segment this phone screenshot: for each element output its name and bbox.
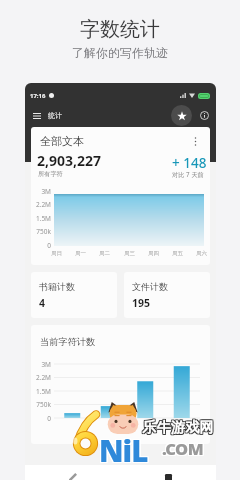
staticText: .COM xyxy=(163,436,205,458)
staticText: NiL xyxy=(98,429,147,469)
staticText: 周四 xyxy=(148,250,159,257)
staticText: 了解你的写作轨迹 xyxy=(72,45,168,60)
staticText: 周五 xyxy=(172,250,183,257)
staticText: 字数统计 xyxy=(80,17,160,42)
staticText: 0 xyxy=(31,414,51,423)
staticText: 乐牛游戏网 xyxy=(141,418,213,436)
staticText: 2.2M xyxy=(31,200,51,209)
staticText: 乐牛游戏网 xyxy=(142,419,214,437)
staticText: 3M xyxy=(31,187,51,196)
staticText: + 148 xyxy=(172,154,207,172)
staticText: .COM xyxy=(161,437,203,459)
staticText: NiL xyxy=(99,431,148,471)
staticText: 3M xyxy=(31,360,51,369)
staticText: 195 xyxy=(132,296,151,310)
button[interactable]: 当前字符计数 xyxy=(31,325,210,444)
staticText: .COM xyxy=(162,436,204,458)
staticText: 乐牛游戏网 xyxy=(142,417,214,435)
staticText: NiL xyxy=(100,429,149,469)
staticText: 乐牛游戏网 xyxy=(142,418,214,436)
staticText: NiL xyxy=(99,430,148,470)
staticText: 乐牛游戏网 xyxy=(141,417,213,435)
button[interactable]: 文件计数 xyxy=(124,272,210,318)
staticText: 2.2M xyxy=(31,373,51,382)
staticText: 全部文本 xyxy=(40,134,84,148)
staticText: 0 xyxy=(31,241,51,250)
button[interactable]: Statistics xyxy=(120,468,216,480)
staticText: .COM xyxy=(163,438,205,460)
staticText: 周一 xyxy=(75,250,86,257)
button[interactable]: 全部文本 xyxy=(31,127,210,265)
staticText: .COM xyxy=(161,438,203,460)
staticText: .COM xyxy=(163,437,205,459)
button[interactable]: Edit xyxy=(25,468,120,480)
button[interactable]: Info xyxy=(197,108,212,123)
staticText: 周二 xyxy=(99,250,110,257)
staticText: 统计 xyxy=(48,111,62,120)
staticText: 乐牛游戏网 xyxy=(141,419,213,437)
button[interactable]: Menu xyxy=(29,108,45,124)
staticText: 1.5M xyxy=(31,387,51,396)
staticText: 乐牛游戏网 xyxy=(143,419,215,437)
staticText: 周六 xyxy=(196,250,207,257)
staticText: .COM xyxy=(162,437,204,459)
staticText: 750k xyxy=(31,227,51,236)
staticText: NiL xyxy=(98,430,147,470)
staticText: 对比 7 天前 xyxy=(172,170,204,178)
staticText: 2,903,227 xyxy=(37,151,102,170)
staticText: NiL xyxy=(100,430,149,470)
staticText: NiL xyxy=(100,431,149,471)
button[interactable]: 书籍计数 xyxy=(31,272,117,318)
button[interactable]: Favorite xyxy=(171,105,192,126)
staticText: 文件计数 xyxy=(132,281,168,292)
staticText: 周三 xyxy=(124,250,135,257)
staticText: 乐牛游戏网 xyxy=(143,418,215,436)
staticText: 当前字符计数 xyxy=(40,336,96,348)
staticText: 17:16 xyxy=(30,92,46,100)
staticText: 4 xyxy=(39,296,46,310)
staticText: 周日 xyxy=(51,250,62,257)
staticText: 乐牛游戏网 xyxy=(143,417,215,435)
staticText: NiL xyxy=(98,431,147,471)
staticText: 所有字符 xyxy=(38,170,63,178)
staticText: .COM xyxy=(162,438,204,460)
staticText: 1.5M xyxy=(31,214,51,223)
staticText: .COM xyxy=(161,436,203,458)
staticText: NiL xyxy=(99,429,148,469)
staticText: 书籍计数 xyxy=(39,281,75,292)
staticText: 750k xyxy=(31,400,51,409)
